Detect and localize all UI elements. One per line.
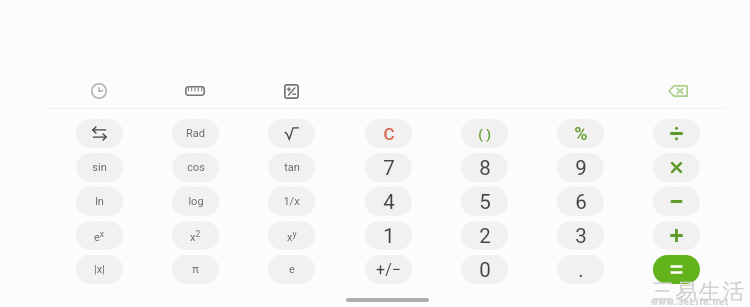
button[interactable]: Multiply [653, 153, 700, 182]
staticText: |x| [94, 263, 105, 276]
button[interactable]: ex [76, 221, 123, 250]
button[interactable]: e [268, 255, 315, 284]
staticText: 4 [383, 190, 395, 214]
button[interactable]: Plus [653, 221, 700, 250]
staticText: 8 [479, 156, 491, 180]
staticText: 三易生活 [651, 278, 745, 306]
button[interactable]: Equals [653, 255, 700, 284]
staticText: ln [95, 195, 104, 208]
button[interactable]: 8 [461, 153, 508, 182]
staticText: log [188, 195, 204, 208]
staticText: e [289, 263, 295, 276]
button[interactable]: 4 [365, 187, 412, 216]
staticText: ( ) [478, 126, 491, 142]
staticText: 9 [575, 156, 587, 180]
staticText: C [383, 124, 395, 144]
button[interactable]: +/− [365, 255, 412, 284]
button[interactable]: 5 [461, 187, 508, 216]
button[interactable]: % [557, 119, 604, 148]
button[interactable]: π [172, 255, 219, 284]
button[interactable]: Minus [653, 187, 700, 216]
staticText: 5 [479, 190, 491, 214]
staticText: tan [284, 161, 300, 174]
button[interactable]: . [557, 255, 604, 284]
button[interactable]: 1/x [268, 187, 315, 216]
button[interactable]: 1 [365, 221, 412, 250]
button[interactable]: log [172, 187, 219, 216]
button[interactable]: History [80, 75, 118, 107]
button[interactable]: cos [172, 153, 219, 182]
staticText: . [578, 258, 584, 282]
staticText: ex [94, 229, 105, 243]
button[interactable]: sin [76, 153, 123, 182]
staticText: 0 [479, 258, 491, 282]
staticText: 1 [383, 224, 395, 248]
button[interactable]: Unit converter [176, 75, 214, 107]
button[interactable]: ( ) [461, 119, 508, 148]
button[interactable]: ln [76, 187, 123, 216]
staticText: +/− [376, 260, 401, 279]
button[interactable]: 9 [557, 153, 604, 182]
staticText: 3 [575, 224, 587, 248]
button[interactable]: Divide [653, 119, 700, 148]
button[interactable]: Swap [76, 119, 123, 148]
button[interactable]: Calculator [272, 75, 310, 107]
staticText: % [574, 123, 588, 144]
button[interactable]: xy [268, 221, 315, 250]
button[interactable]: 3 [557, 221, 604, 250]
button[interactable]: C [365, 119, 412, 148]
staticText: 1/x [283, 195, 300, 208]
button[interactable]: Square root [268, 119, 315, 148]
button[interactable]: Backspace [659, 75, 697, 107]
button[interactable]: tan [268, 153, 315, 182]
button[interactable]: 7 [365, 153, 412, 182]
button[interactable]: x2 [172, 221, 219, 250]
staticText: 2 [479, 224, 491, 248]
staticText: xy [287, 229, 297, 243]
staticText: sin [92, 161, 107, 174]
button[interactable]: 6 [557, 187, 604, 216]
staticText: 7 [383, 156, 395, 180]
button[interactable]: 0 [461, 255, 508, 284]
button[interactable]: Rad [172, 119, 219, 148]
staticText: π [192, 263, 199, 276]
staticText: x2 [190, 229, 201, 243]
staticText: www.3eLife.net [651, 296, 730, 307]
staticText: 6 [575, 190, 587, 214]
staticText: Rad [186, 127, 205, 140]
button[interactable]: 2 [461, 221, 508, 250]
staticText: cos [187, 161, 205, 174]
button[interactable]: |x| [76, 255, 123, 284]
